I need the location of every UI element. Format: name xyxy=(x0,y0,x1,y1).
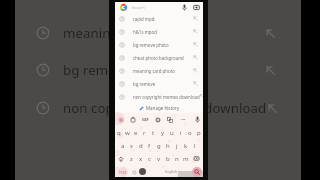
button[interactable]: Emoji xyxy=(130,168,138,176)
button[interactable]: meaning card photo xyxy=(115,64,203,77)
staticText: x xyxy=(139,155,143,163)
staticText: k xyxy=(184,142,188,150)
button[interactable]: Manage history xyxy=(115,103,203,113)
button[interactable]: d xyxy=(136,139,145,152)
button[interactable]: r xyxy=(140,126,149,139)
button[interactable]: s xyxy=(127,139,136,152)
button[interactable]: non copyright memes download xyxy=(15,96,301,120)
button[interactable]: m xyxy=(181,152,190,165)
button[interactable]: g xyxy=(154,139,163,152)
button[interactable]: Google search xyxy=(117,116,124,123)
staticText: English xyxy=(165,169,178,174)
button[interactable]: c xyxy=(145,152,154,165)
staticText: y xyxy=(161,129,165,137)
staticText: m xyxy=(183,155,189,163)
button[interactable]: j xyxy=(172,139,181,152)
button[interactable]: Space xyxy=(149,167,193,176)
staticText: meaning card photo xyxy=(133,68,175,74)
staticText: e xyxy=(134,129,138,137)
button[interactable]: l xyxy=(190,139,199,152)
staticText: ••• xyxy=(181,117,186,122)
staticText: g xyxy=(157,142,161,150)
button[interactable]: Stickers xyxy=(139,168,146,175)
button[interactable]: b xyxy=(163,152,172,165)
button[interactable]: e xyxy=(131,126,140,139)
staticText: cheat photo background xyxy=(133,55,184,61)
staticText: bg remove xyxy=(133,81,156,87)
button[interactable]: Google Lens xyxy=(193,4,200,11)
button[interactable]: Voice search xyxy=(181,4,188,11)
button[interactable]: v xyxy=(154,152,163,165)
button[interactable]: h xyxy=(163,139,172,152)
staticText: meaning card photo xyxy=(63,24,191,42)
staticText: bg remove photo xyxy=(133,42,169,48)
button[interactable]: cheat photo background xyxy=(115,51,203,64)
button[interactable]: bg remove photo xyxy=(15,58,301,82)
staticText: GIF xyxy=(142,117,149,122)
button[interactable]: h&1s mpod xyxy=(115,25,203,38)
button[interactable]: bg remove photo xyxy=(115,38,203,51)
button[interactable]: Backspace xyxy=(190,152,203,165)
staticText: o xyxy=(188,129,192,137)
staticText: i xyxy=(180,129,182,137)
staticText: z xyxy=(130,155,133,163)
staticText: s xyxy=(130,142,133,150)
button[interactable]: rapid mpd xyxy=(115,12,203,25)
staticText: j xyxy=(176,142,178,150)
staticText: r xyxy=(143,129,146,137)
button[interactable]: x xyxy=(136,152,145,165)
button[interactable]: w xyxy=(123,126,131,139)
staticText: a xyxy=(121,142,125,150)
button[interactable]: t xyxy=(149,126,158,139)
staticText: h xyxy=(166,142,170,150)
staticText: n xyxy=(175,155,179,163)
button[interactable]: Shift xyxy=(115,152,127,165)
staticText: Manage history xyxy=(146,105,179,111)
button[interactable]: bg remove xyxy=(115,77,203,90)
button[interactable]: Search xyxy=(192,167,202,177)
button[interactable]: z xyxy=(127,152,136,165)
staticText: bg remove photo xyxy=(63,61,172,79)
staticText: b xyxy=(166,155,170,163)
staticText: f xyxy=(148,142,151,150)
button[interactable]: o xyxy=(185,126,194,139)
staticText: d xyxy=(139,142,143,150)
staticText: t xyxy=(152,129,155,137)
staticText: c xyxy=(148,155,151,163)
staticText: non copyright memes download xyxy=(63,99,267,117)
staticText: non copyright memes download xyxy=(133,94,200,100)
staticText: q xyxy=(117,129,121,137)
staticText: ?123 xyxy=(119,170,127,175)
staticText: h&1s mpod xyxy=(133,29,157,35)
staticText: rapid mpd xyxy=(133,16,155,22)
button[interactable]: ?123 xyxy=(118,167,128,177)
button[interactable]: Search xyxy=(115,0,203,180)
staticText: u xyxy=(170,129,174,137)
button[interactable]: u xyxy=(167,126,176,139)
button[interactable]: i xyxy=(176,126,185,139)
button[interactable]: n xyxy=(172,152,181,165)
button[interactable]: p xyxy=(194,126,203,139)
button[interactable]: k xyxy=(181,139,190,152)
button[interactable]: q xyxy=(115,126,123,139)
staticText: p xyxy=(197,129,201,137)
button[interactable]: meaning card photo xyxy=(15,21,301,45)
staticText: l xyxy=(194,142,196,150)
button[interactable]: y xyxy=(158,126,167,139)
button[interactable]: Search xyxy=(115,2,203,12)
button[interactable]: a xyxy=(118,139,127,152)
staticText: w xyxy=(125,129,130,137)
staticText: v xyxy=(157,155,161,163)
button[interactable]: f xyxy=(145,139,154,152)
staticText: Search xyxy=(132,5,145,10)
button[interactable]: non copyright memes download xyxy=(115,90,203,103)
